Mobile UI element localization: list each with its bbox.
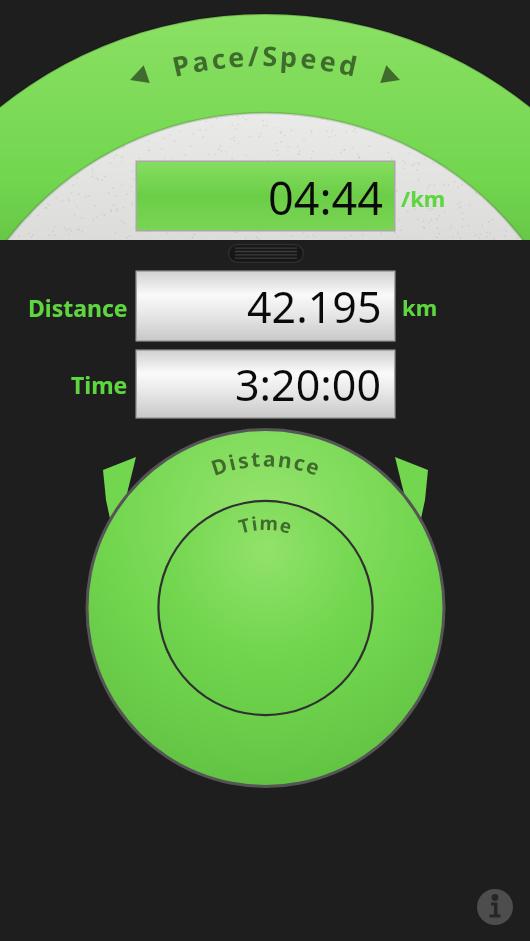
button[interactable]: Pace Speed mode selector bbox=[0, 0, 530, 240]
button[interactable]: Distance value bbox=[137, 272, 394, 340]
button[interactable]: Info bbox=[477, 889, 513, 925]
button[interactable]: Time value bbox=[137, 351, 394, 417]
button[interactable]: Pace per kilometre value bbox=[137, 162, 394, 230]
button[interactable]: Time dial bbox=[159, 502, 372, 715]
button[interactable]: Distance dial bbox=[89, 431, 443, 785]
